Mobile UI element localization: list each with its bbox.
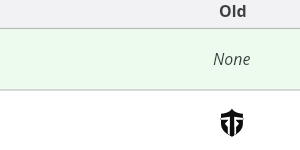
button[interactable]: App logo (220, 107, 244, 137)
button[interactable]: None (0, 28, 300, 89)
staticText: None (213, 48, 251, 70)
staticText: Old (219, 0, 247, 22)
button[interactable]: Old (0, 0, 300, 28)
